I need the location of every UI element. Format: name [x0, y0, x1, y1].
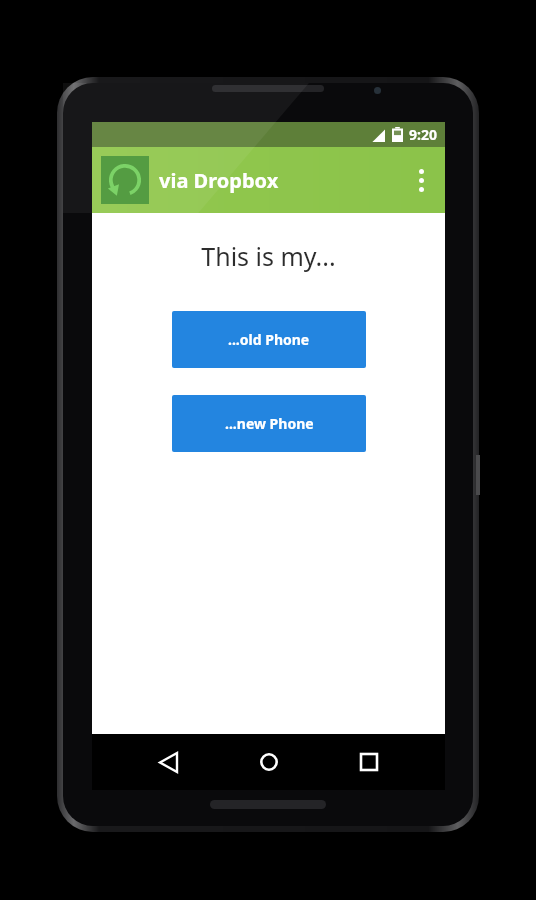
staticText: ...old Phone: [228, 330, 310, 349]
button[interactable]: ...old Phone: [172, 311, 366, 368]
staticText: This is my...: [201, 239, 336, 273]
button[interactable]: Home: [245, 738, 293, 786]
button[interactable]: ...new Phone: [172, 395, 366, 452]
staticText: via Dropbox: [159, 167, 279, 194]
other: App icon: [101, 156, 149, 204]
button[interactable]: Recent apps: [345, 738, 393, 786]
staticText: ...new Phone: [225, 414, 314, 433]
button[interactable]: More options: [397, 156, 445, 204]
staticText: 9:20: [409, 125, 437, 144]
button[interactable]: Back: [144, 738, 192, 786]
